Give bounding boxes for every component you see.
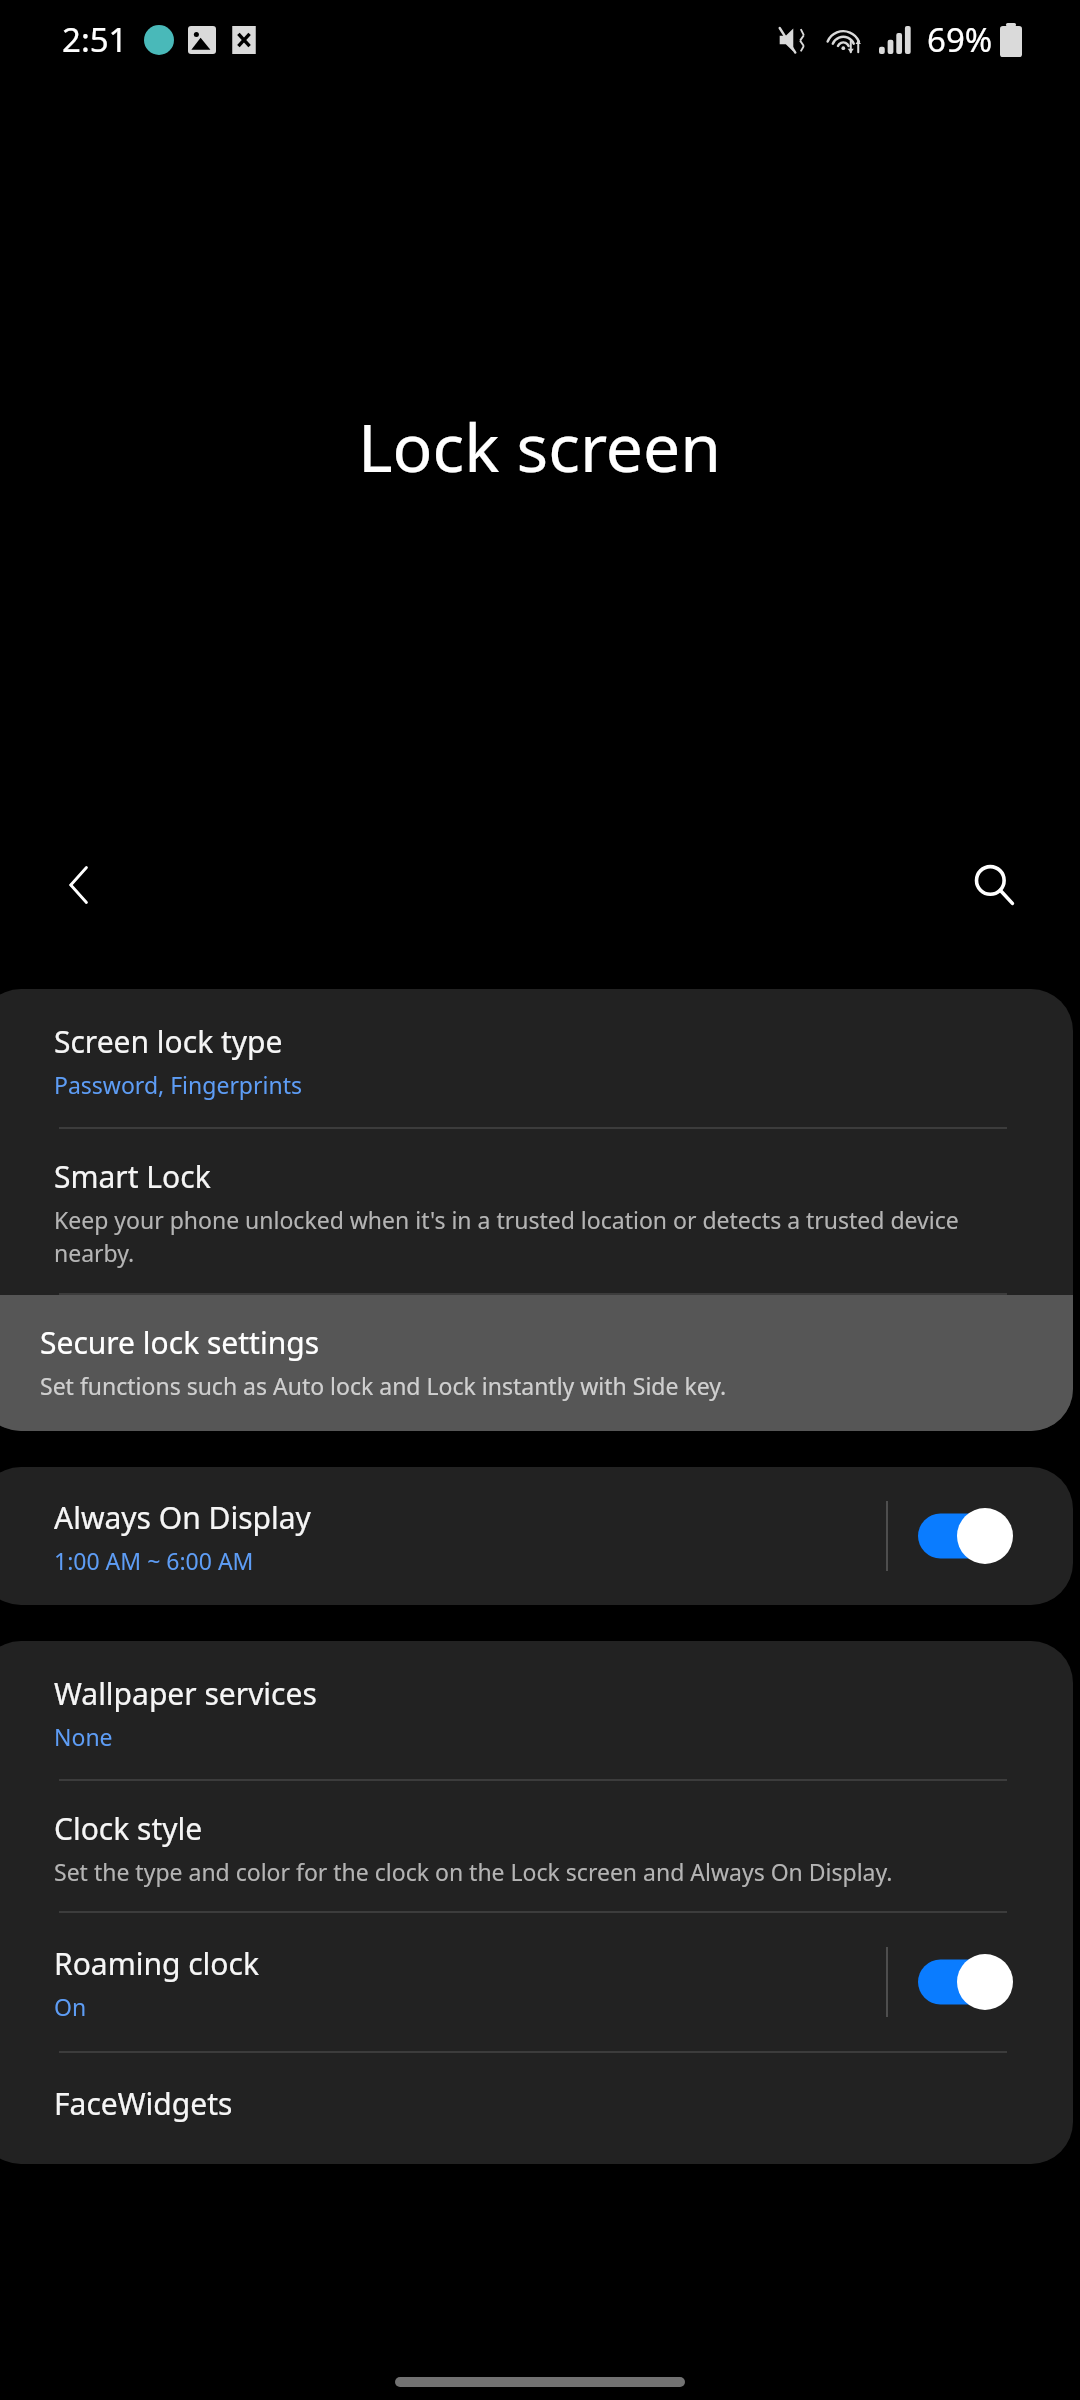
button[interactable]: Toggle Always On Display bbox=[888, 1494, 1043, 1578]
staticText: Keep your phone unlocked when it's in a … bbox=[54, 1204, 1043, 1269]
button[interactable]: Always On Display bbox=[0, 1467, 1073, 1605]
staticText: Wallpaper services bbox=[54, 1673, 317, 1714]
staticText: None bbox=[54, 1721, 113, 1752]
staticText: Password, Fingerprints bbox=[54, 1069, 302, 1100]
staticText: Lock screen bbox=[358, 401, 722, 491]
button[interactable]: Smart Lock bbox=[0, 1129, 1073, 1293]
staticText: Roaming clock bbox=[54, 1943, 259, 1984]
staticText: 2:51 bbox=[62, 17, 128, 62]
staticText: Smart Lock bbox=[54, 1156, 211, 1197]
button[interactable]: Clock style bbox=[0, 1781, 1073, 1911]
staticText: Secure lock settings bbox=[40, 1322, 319, 1363]
staticText: FaceWidgets bbox=[54, 2083, 233, 2124]
button[interactable]: Secure lock settings bbox=[0, 1295, 1073, 1431]
button[interactable]: Toggle Roaming clock bbox=[888, 1940, 1043, 2024]
staticText: Screen lock type bbox=[54, 1021, 283, 1062]
staticText: 69% bbox=[927, 17, 993, 62]
staticText: Set functions such as Auto lock and Lock… bbox=[40, 1370, 727, 1401]
button[interactable]: Back bbox=[18, 823, 142, 947]
button[interactable]: Roaming clock bbox=[0, 1913, 1073, 2051]
staticText: Set the type and color for the clock on … bbox=[54, 1856, 893, 1887]
staticText: On bbox=[54, 1991, 87, 2022]
staticText: Clock style bbox=[54, 1808, 203, 1849]
button[interactable]: Wallpaper services bbox=[0, 1641, 1073, 1779]
staticText: 1:00 AM ~ 6:00 AM bbox=[54, 1545, 254, 1576]
staticText: Always On Display bbox=[54, 1497, 311, 1538]
button[interactable]: FaceWidgets bbox=[0, 2053, 1073, 2164]
button[interactable]: Search bbox=[932, 823, 1056, 947]
button[interactable]: Screen lock type bbox=[0, 989, 1073, 1127]
